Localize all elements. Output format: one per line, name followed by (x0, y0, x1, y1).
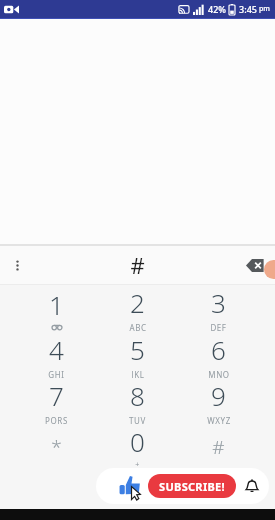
staticText: pm (259, 4, 270, 14)
button[interactable]: Notifications (243, 477, 261, 495)
staticText: 3:45 (239, 3, 257, 15)
staticText: GHI (48, 369, 65, 378)
staticText: WXYZ (207, 415, 231, 424)
button[interactable]: 4 (16, 332, 97, 378)
staticText: 7 (49, 378, 64, 413)
button[interactable]: # (178, 424, 259, 470)
staticText: TUV (129, 415, 146, 424)
button[interactable]: 3 (178, 285, 259, 332)
staticText: 1 (49, 287, 64, 322)
staticText: # (130, 250, 145, 280)
staticText: ABC (129, 322, 147, 332)
button[interactable]: 5 (97, 332, 178, 378)
button[interactable]: Backspace (246, 259, 266, 272)
staticText: DEF (210, 322, 227, 332)
button[interactable]: 2 (97, 285, 178, 332)
staticText: PQRS (45, 415, 68, 424)
staticText: 4 (49, 332, 64, 367)
button[interactable]: Like (118, 473, 144, 499)
staticText: * (51, 434, 62, 460)
staticText: 2 (130, 285, 145, 320)
staticText: 5 (130, 332, 145, 367)
staticText: 9 (211, 378, 226, 413)
staticText: 8 (130, 378, 145, 413)
staticText: 3 (211, 285, 226, 320)
button[interactable]: 9 (178, 378, 259, 424)
staticText: 0 (130, 424, 145, 459)
button[interactable]: 6 (178, 332, 259, 378)
other: Screen recording (4, 4, 19, 15)
staticText: MNO (208, 369, 230, 378)
button[interactable]: 7 (16, 378, 97, 424)
staticText: + (135, 460, 140, 470)
button[interactable]: 0 (97, 424, 178, 470)
button[interactable]: SUBSCRIBE! (148, 474, 236, 498)
staticText: # (212, 434, 225, 460)
button[interactable]: * (16, 424, 97, 470)
button[interactable]: 8 (97, 378, 178, 424)
button[interactable]: 1 (16, 285, 97, 332)
button[interactable]: More options (0, 248, 34, 282)
staticText: 42% (208, 3, 226, 15)
staticText: JKL (131, 369, 145, 378)
staticText: 6 (211, 332, 226, 367)
staticText: SUBSCRIBE! (159, 479, 225, 494)
